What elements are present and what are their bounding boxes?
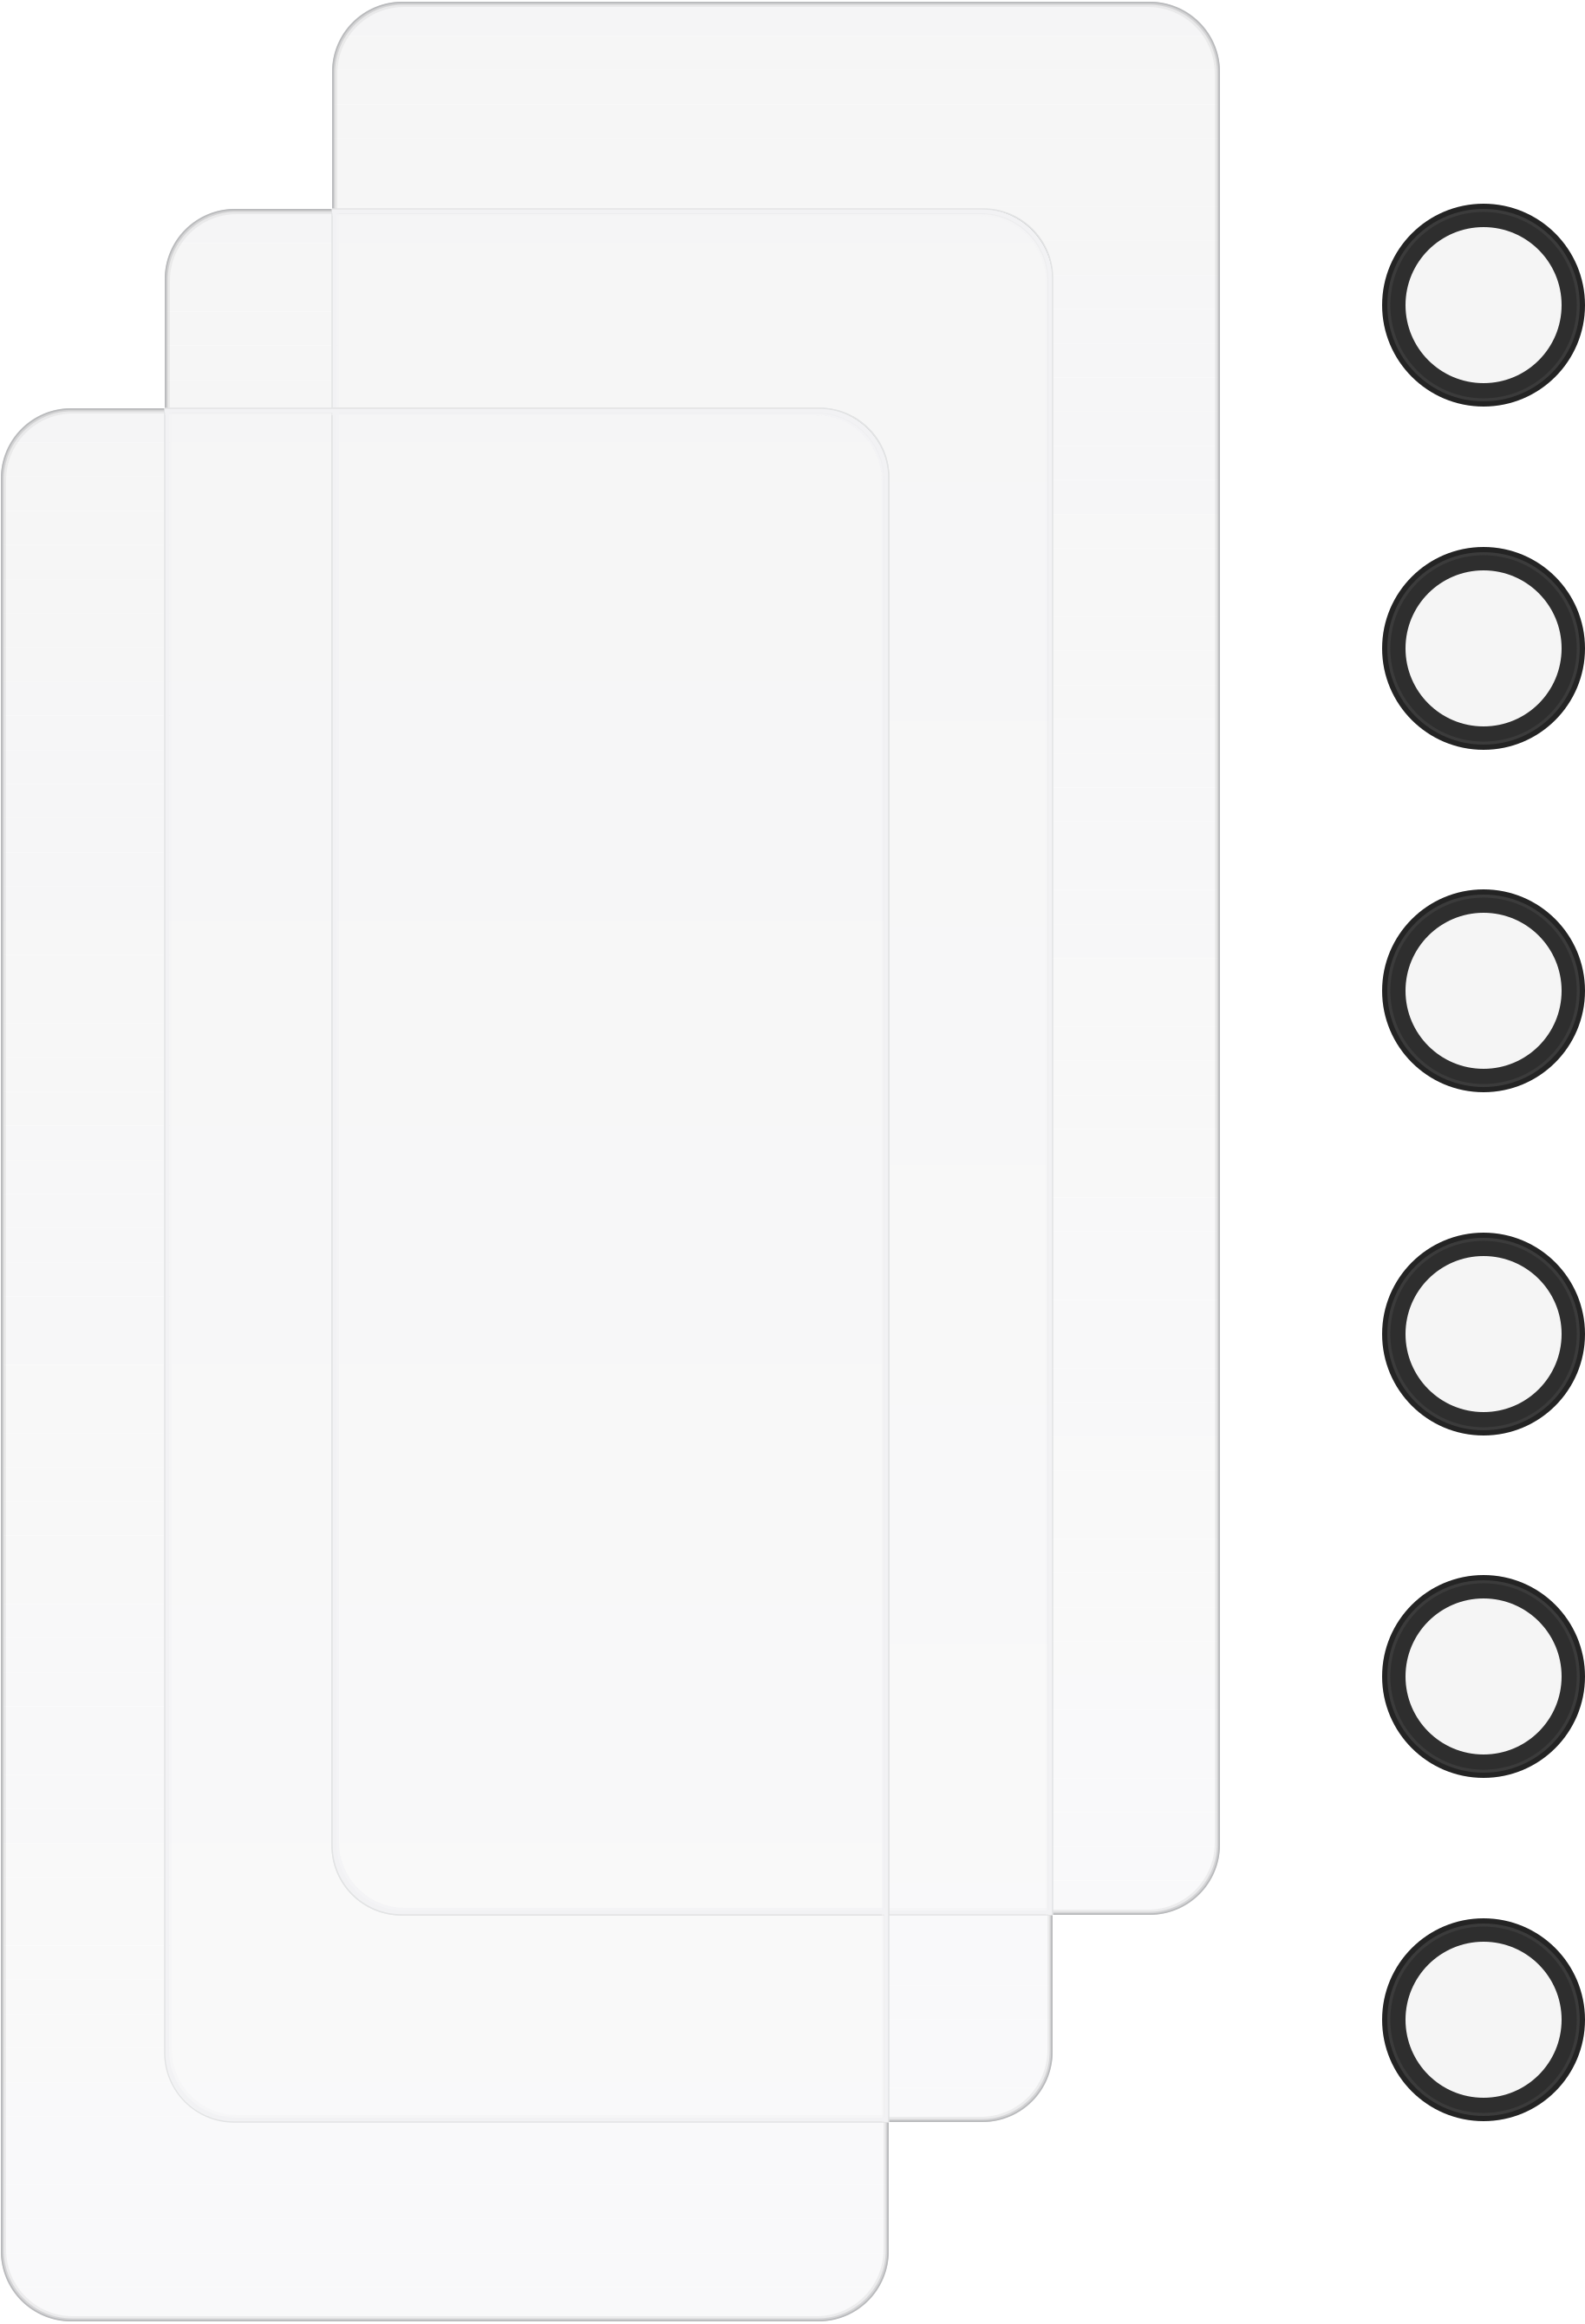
button[interactable]: Camera lens protector ring 6 bbox=[1382, 1918, 1585, 2121]
button[interactable]: Camera lens protector ring 2 bbox=[1382, 547, 1585, 750]
button[interactable]: Camera lens protector ring 4 bbox=[1382, 1233, 1585, 1435]
button[interactable]: Camera lens protector ring 5 bbox=[1382, 1575, 1585, 1778]
button[interactable]: Camera lens protector ring 3 bbox=[1382, 889, 1585, 1092]
button[interactable]: Three tempered glass screen protectors bbox=[0, 0, 1585, 2324]
button[interactable]: Camera lens protector ring 1 bbox=[1382, 204, 1585, 407]
